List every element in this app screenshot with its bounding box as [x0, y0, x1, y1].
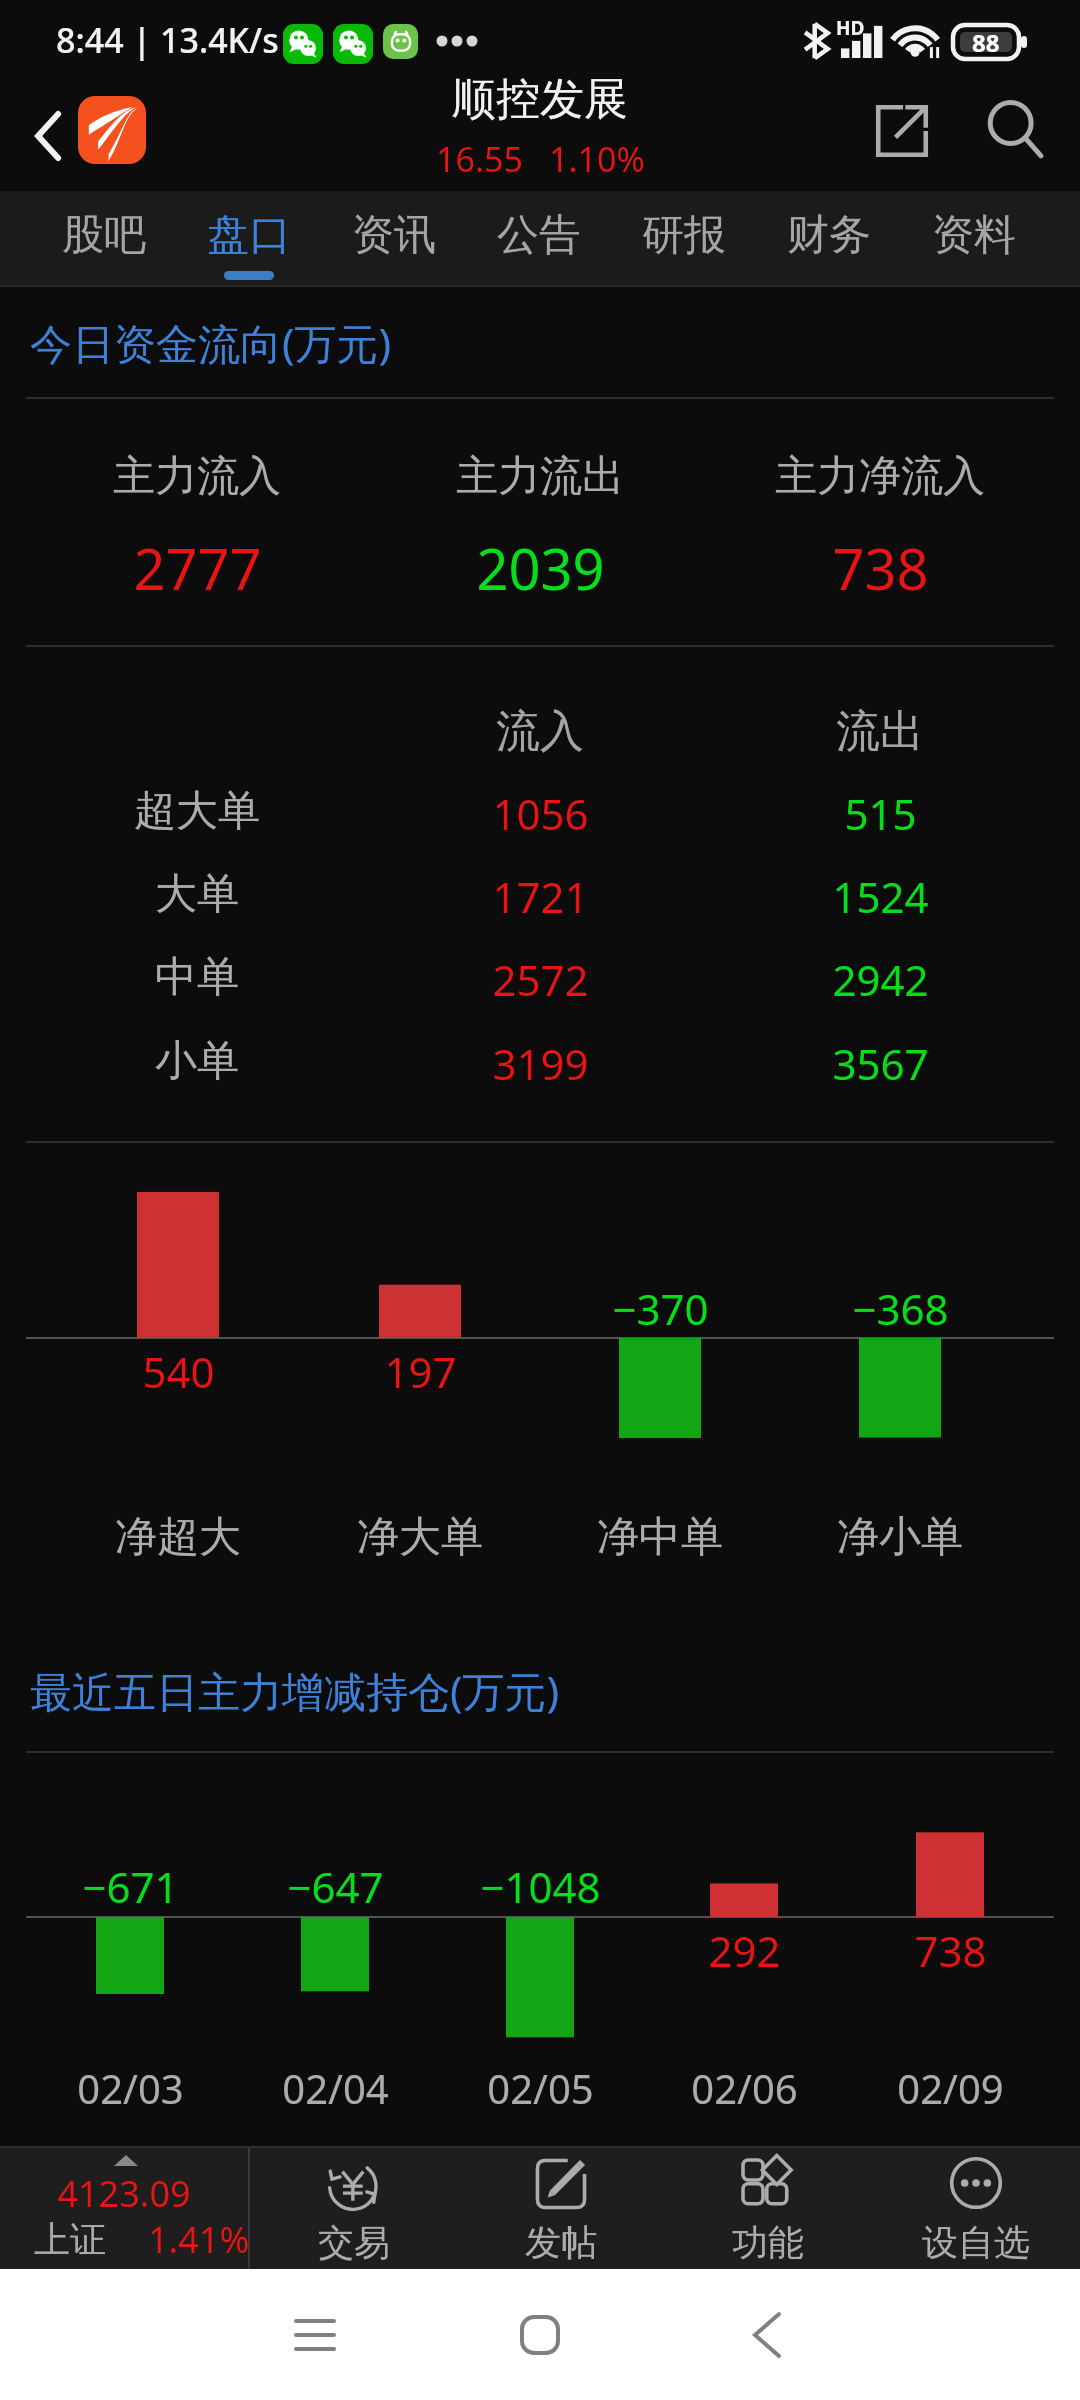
button[interactable]: Home	[455, 2285, 625, 2385]
button[interactable]: 资讯	[322, 191, 466, 287]
staticText: 3567	[832, 1035, 929, 1092]
staticText: 1721	[492, 868, 589, 925]
staticText: 超大单	[134, 785, 260, 838]
button[interactable]: 发帖	[457, 2147, 664, 2269]
button[interactable]: 研报	[612, 191, 756, 287]
staticText: 02/04	[282, 2061, 389, 2115]
staticText: 功能	[732, 2220, 804, 2265]
staticText: 中单	[155, 951, 239, 1004]
staticText: 净超大	[115, 1511, 241, 1564]
staticText: 公告	[497, 209, 581, 262]
staticText: 净小单	[837, 1511, 963, 1564]
staticText: 顺控发展	[452, 72, 628, 127]
staticText: 设自选	[922, 2220, 1030, 2265]
staticText: 1.10%	[549, 136, 645, 182]
button[interactable]: 盘口	[177, 191, 321, 287]
staticText: 292	[708, 1922, 781, 1979]
button[interactable]: Eastmoney	[78, 96, 146, 164]
staticText: −1048	[480, 1858, 601, 1915]
staticText: 主力流出	[456, 450, 624, 503]
staticText: −368	[852, 1280, 949, 1337]
button[interactable]: 设自选	[872, 2147, 1080, 2269]
staticText: 今日资金流向(万元)	[30, 314, 392, 371]
button[interactable]: Search	[975, 91, 1055, 171]
staticText: 197	[384, 1343, 457, 1400]
button[interactable]: Back	[682, 2285, 852, 2385]
staticText: 股吧	[62, 209, 146, 262]
staticText: 2777	[133, 530, 262, 606]
staticText: 4123.09	[57, 2169, 191, 2218]
button[interactable]: 功能	[664, 2147, 872, 2269]
staticText: 主力净流入	[775, 450, 985, 503]
staticText: 1056	[492, 785, 589, 842]
staticText: 02/03	[77, 2061, 184, 2115]
staticText: HD	[836, 15, 865, 41]
staticText: 2039	[476, 530, 605, 606]
staticText: 540	[142, 1343, 215, 1400]
staticText: 资讯	[352, 209, 436, 262]
staticText: 财务	[787, 209, 871, 262]
staticText: 02/06	[691, 2061, 798, 2115]
button[interactable]: Recents	[230, 2285, 400, 2385]
staticText: 小单	[155, 1035, 239, 1088]
staticText: 主力流入	[113, 450, 281, 503]
button[interactable]: Share	[862, 91, 942, 171]
staticText: 流入	[496, 704, 584, 759]
staticText: 发帖	[525, 2220, 597, 2265]
button[interactable]: Back	[14, 101, 84, 171]
staticText: 研报	[642, 209, 726, 262]
staticText: 2942	[832, 951, 929, 1008]
staticText: 流出	[836, 704, 924, 759]
staticText: 738	[832, 530, 929, 606]
staticText: 16.55	[436, 136, 523, 182]
button[interactable]: 交易	[250, 2147, 457, 2269]
staticText: 盘口	[207, 209, 291, 262]
staticText: 88	[972, 26, 1000, 59]
staticText: 交易	[318, 2220, 390, 2265]
staticText: −647	[287, 1858, 384, 1915]
staticText: 515	[844, 785, 917, 842]
staticText: 738	[914, 1922, 987, 1979]
staticText: 上证	[34, 2217, 106, 2262]
staticText: 3199	[492, 1035, 589, 1092]
staticText: 02/09	[897, 2061, 1004, 2115]
staticText: 净中单	[597, 1511, 723, 1564]
staticText: 净大单	[357, 1511, 483, 1564]
button[interactable]: 资料	[902, 191, 1046, 287]
staticText: 大单	[155, 868, 239, 921]
staticText: −671	[82, 1858, 179, 1915]
staticText: 1524	[832, 868, 929, 925]
staticText: 最近五日主力增减持仓(万元)	[30, 1662, 560, 1719]
button[interactable]: 财务	[757, 191, 901, 287]
staticText: −370	[612, 1280, 709, 1337]
staticText: 1.41%	[148, 2215, 250, 2264]
button[interactable]: 股吧	[32, 191, 176, 287]
button[interactable]: 公告	[467, 191, 611, 287]
staticText: 8:44 | 13.4K/s	[56, 17, 279, 63]
staticText: 2572	[492, 951, 589, 1008]
button[interactable]: 4123.09	[0, 2147, 248, 2269]
staticText: 资料	[932, 209, 1016, 262]
staticText: 02/05	[487, 2061, 594, 2115]
